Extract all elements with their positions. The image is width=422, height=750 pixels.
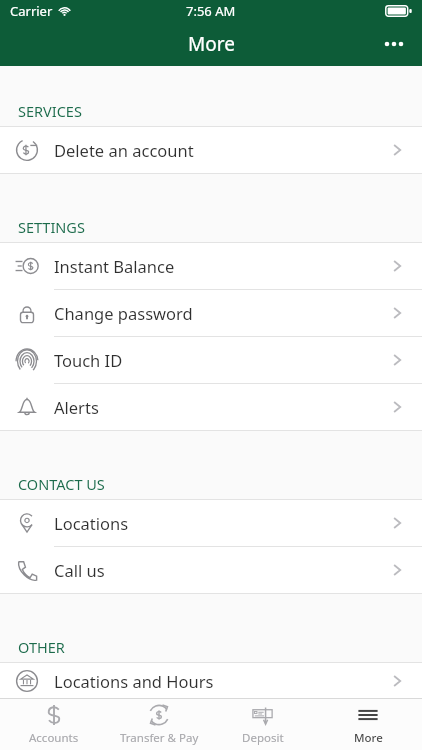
button[interactable]: Touch ID — [0, 337, 422, 383]
staticText: Instant Balance — [54, 255, 175, 277]
button[interactable]: Instant Balance — [0, 243, 422, 289]
staticText: Call us — [54, 559, 105, 581]
staticText: Change password — [54, 302, 193, 324]
button[interactable]: Locations — [0, 500, 422, 546]
staticText: Accounts — [29, 730, 79, 746]
staticText: 7:56 AM — [186, 2, 236, 20]
staticText: Touch ID — [54, 349, 123, 371]
staticText: SETTINGS — [18, 217, 85, 237]
staticText: More — [354, 730, 383, 746]
button[interactable]: Change password — [0, 290, 422, 336]
button[interactable]: Call us — [0, 547, 422, 593]
staticText: Delete an account — [54, 139, 194, 161]
staticText: Alerts — [54, 396, 99, 418]
staticText: More — [188, 31, 235, 57]
staticText: CONTACT US — [18, 474, 105, 494]
button[interactable]: Delete an account — [0, 127, 422, 173]
button[interactable]: Accounts — [4, 699, 104, 750]
button[interactable]: Transfer & Pay — [109, 699, 209, 750]
button[interactable]: Alerts — [0, 384, 422, 430]
staticText: Locations — [54, 512, 129, 534]
staticText: Deposit — [242, 730, 284, 746]
staticText: Carrier — [10, 2, 53, 20]
button[interactable]: Locations and Hours — [0, 663, 422, 698]
staticText: SERVICES — [18, 101, 82, 121]
button[interactable]: Deposit — [213, 699, 313, 750]
button[interactable]: More — [318, 699, 418, 750]
button[interactable]: More options — [376, 26, 412, 62]
staticText: OTHER — [18, 637, 65, 657]
staticText: Locations and Hours — [54, 670, 214, 692]
staticText: Transfer & Pay — [120, 730, 199, 746]
